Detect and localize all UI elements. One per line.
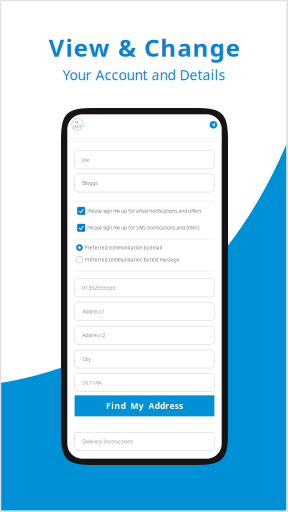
staticText: Your Account and Details	[62, 66, 225, 84]
button[interactable]: Find My Address	[75, 395, 214, 416]
staticText: Preferred communication by email	[85, 244, 162, 251]
staticText: Joe	[82, 156, 89, 163]
button[interactable]: Preferred communication by email	[75, 242, 214, 254]
staticText: Bloggs	[82, 179, 98, 187]
button[interactable]: Please sign me up for SMS notifications …	[75, 222, 214, 234]
staticText: Address2	[82, 332, 105, 339]
staticText: 01352555555	[82, 284, 115, 291]
staticText: Address1	[82, 308, 105, 315]
staticText: Preferred communication by text message	[85, 256, 180, 263]
button[interactable]: Back	[210, 121, 217, 129]
button[interactable]: Please sign me up for email notification…	[75, 205, 214, 217]
staticText: Find My Address	[106, 400, 183, 411]
staticText: THE SHOP	[73, 120, 82, 129]
staticText: DE11AA	[82, 379, 101, 386]
staticText: Please sign me up for SMS notifications …	[87, 225, 199, 231]
button[interactable]: Preferred communication by text message	[75, 254, 214, 266]
staticText: View & Change	[48, 31, 240, 64]
staticText: Please sign me up for email notification…	[87, 208, 201, 214]
staticText: City	[82, 355, 91, 363]
staticText: Delivery Instructions	[82, 438, 133, 445]
